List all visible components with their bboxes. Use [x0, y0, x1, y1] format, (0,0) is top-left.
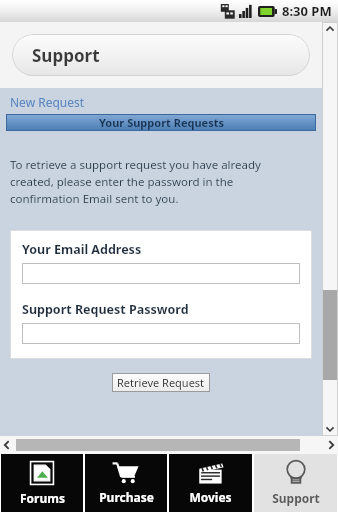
staticText: Your Email Address [22, 241, 142, 258]
staticText: Retrieve Request [117, 375, 205, 390]
button[interactable]: Support [12, 34, 310, 76]
staticText: Support [32, 44, 100, 67]
button[interactable]: Purchase [85, 454, 167, 512]
staticText: Purchase [99, 489, 154, 505]
staticText: Your Support Requests [99, 115, 224, 130]
staticText: 8:30 PM [282, 2, 332, 20]
staticText: Forums [20, 490, 65, 506]
button[interactable] [22, 263, 300, 284]
button[interactable]: Support [254, 454, 337, 512]
button[interactable]: Retrieve Request [117, 375, 205, 390]
button[interactable]: Movies [169, 454, 252, 512]
other: Vertical scroll bar [322, 22, 338, 436]
button[interactable]: Your Support Requests [6, 114, 316, 131]
button[interactable]: Forums [1, 454, 83, 512]
button[interactable] [22, 323, 300, 344]
staticText: Support Request Password [22, 301, 189, 318]
staticText: To retrieve a support request you have a… [10, 157, 261, 207]
staticText: Movies [189, 489, 232, 505]
other: Horizontal scroll bar [0, 436, 338, 454]
button[interactable]: New Request [10, 94, 85, 110]
staticText: Support [272, 490, 320, 506]
